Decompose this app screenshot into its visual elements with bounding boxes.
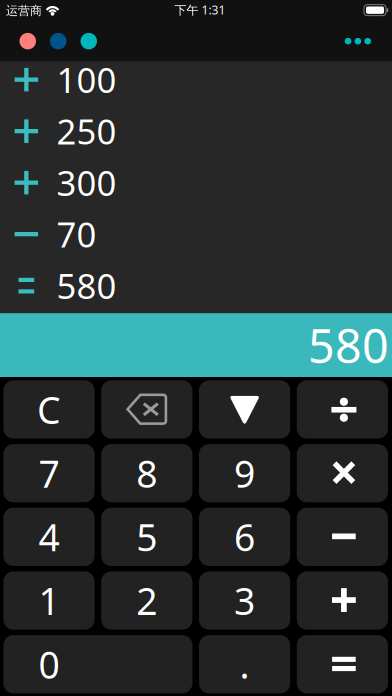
button[interactable]: 7 — [3, 444, 95, 502]
staticText: 2 — [136, 576, 157, 625]
staticText: 8 — [136, 448, 157, 498]
staticText: 3 — [234, 576, 255, 625]
button[interactable]: C — [3, 380, 95, 438]
staticText: 250 — [57, 108, 117, 154]
button[interactable]: Minus — [297, 508, 388, 566]
staticText: 70 — [57, 211, 97, 257]
button[interactable]: Multiply — [297, 444, 388, 502]
staticText: 4 — [38, 512, 59, 562]
button[interactable]: More options — [335, 26, 381, 56]
button[interactable]: Memory teal — [80, 33, 97, 49]
button[interactable]: Divide — [297, 380, 388, 438]
button[interactable]: 3 — [199, 571, 290, 630]
staticText: 1 — [38, 576, 59, 625]
staticText: 300 — [57, 160, 117, 206]
button[interactable]: Plus — [297, 571, 388, 630]
staticText: 0 — [38, 639, 59, 689]
button[interactable]: 1 — [3, 571, 95, 630]
staticText: C — [37, 385, 61, 434]
staticText: 9 — [234, 448, 255, 498]
staticText: 7 — [38, 448, 59, 498]
staticText: 运营商 — [6, 3, 42, 18]
button[interactable]: Collapse history — [199, 380, 290, 438]
staticText: 580 — [57, 263, 117, 309]
button[interactable]: Memory red — [19, 33, 36, 49]
staticText: . — [240, 639, 250, 689]
staticText: 下午 1:31 — [174, 2, 225, 18]
staticText: 5 — [136, 512, 157, 562]
staticText: 6 — [234, 512, 255, 562]
button[interactable]: 9 — [199, 444, 290, 502]
button[interactable]: 8 — [101, 444, 192, 502]
staticText: 580 — [308, 314, 389, 376]
button[interactable]: Memory blue — [50, 33, 66, 49]
button[interactable]: 0 — [3, 635, 192, 693]
button[interactable]: . — [199, 635, 290, 693]
staticText: 100 — [57, 57, 117, 103]
button[interactable]: Equals — [297, 635, 388, 693]
button[interactable]: 6 — [199, 508, 290, 566]
button[interactable]: 4 — [3, 508, 95, 566]
button[interactable]: Backspace — [101, 380, 192, 438]
button[interactable]: 2 — [101, 571, 192, 630]
button[interactable]: 5 — [101, 508, 192, 566]
